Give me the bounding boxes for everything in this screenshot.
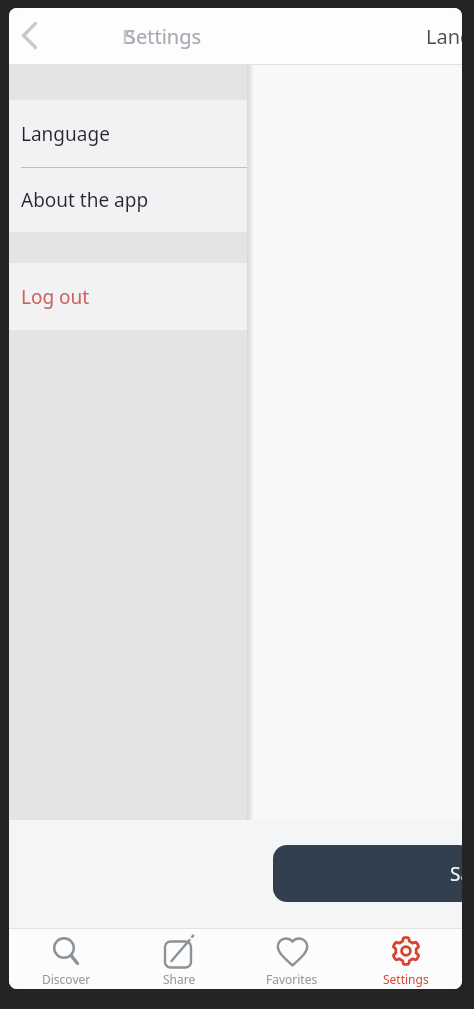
button[interactable]	[122, 929, 235, 989]
button[interactable]	[9, 929, 122, 989]
staticText: About the app	[21, 187, 149, 213]
staticText: Discover	[42, 971, 91, 987]
button[interactable]: About the app	[9, 168, 247, 232]
staticText: Share	[163, 971, 196, 987]
staticText: Settings	[383, 971, 429, 987]
button[interactable]	[11, 14, 47, 58]
staticText: B	[122, 23, 135, 50]
staticText: Language	[21, 121, 110, 147]
staticText: Log out	[21, 284, 90, 310]
button[interactable]: Log out	[9, 263, 247, 330]
button[interactable]: Language	[9, 100, 247, 167]
button[interactable]	[348, 929, 462, 989]
staticText: Settings	[125, 23, 202, 50]
button[interactable]: Save	[273, 845, 462, 902]
button[interactable]	[235, 929, 348, 989]
staticText: Favorites	[266, 971, 318, 987]
staticText: Save	[450, 861, 462, 887]
staticText: Lang	[426, 23, 462, 50]
